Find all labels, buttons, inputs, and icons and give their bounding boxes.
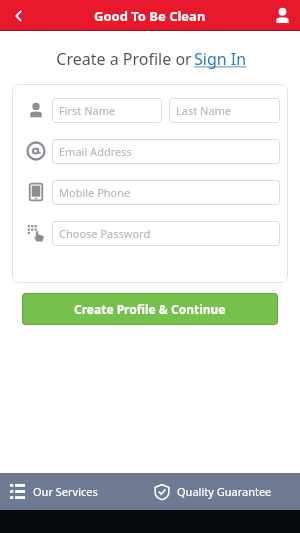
button[interactable]: Mobile Phone [52, 180, 280, 205]
button[interactable]: Email Address [52, 139, 280, 164]
button[interactable]: Sign In [194, 48, 247, 70]
button[interactable]: Last Name [169, 98, 280, 123]
button[interactable]: Account [264, 0, 300, 31]
staticText: Create Profile & Continue [74, 301, 226, 317]
button[interactable]: Quality Guarantee [150, 473, 300, 510]
staticText: Our Services [33, 484, 98, 499]
staticText: Choose Password [59, 226, 151, 241]
staticText: Email Address [59, 144, 132, 159]
button[interactable]: Create Profile & Continue [22, 293, 278, 325]
staticText: First Name [59, 103, 116, 118]
staticText: Good To Be Clean [94, 7, 206, 25]
button[interactable]: First Name [52, 98, 162, 123]
staticText: Last Name [176, 103, 232, 118]
staticText: Sign In [194, 48, 247, 70]
staticText: Create a Profile or [54, 48, 194, 70]
button[interactable]: Back [0, 0, 38, 31]
staticText: Mobile Phone [59, 185, 131, 200]
button[interactable]: Choose Password [52, 221, 280, 246]
button[interactable]: Our Services [0, 473, 150, 510]
staticText: Quality Guarantee [177, 484, 272, 499]
